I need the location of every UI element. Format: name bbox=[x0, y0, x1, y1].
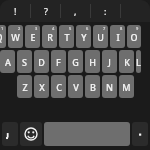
staticText: 5 bbox=[69, 26, 72, 31]
button[interactable]: Y bbox=[76, 25, 91, 48]
staticText: I bbox=[116, 31, 120, 43]
button[interactable]: Emoji bbox=[20, 122, 42, 146]
button[interactable]: ? bbox=[31, 0, 60, 22]
staticText: G bbox=[72, 56, 79, 68]
button[interactable]: V bbox=[68, 75, 83, 98]
button[interactable]: Z bbox=[17, 75, 32, 98]
staticText: K bbox=[124, 56, 130, 68]
staticText: H bbox=[89, 56, 96, 68]
button[interactable]: , bbox=[61, 0, 90, 22]
staticText: 1 bbox=[1, 26, 4, 31]
button[interactable]: W bbox=[8, 25, 23, 48]
staticText: , bbox=[74, 5, 77, 17]
button[interactable]: I bbox=[110, 25, 125, 48]
button[interactable]: E bbox=[25, 25, 40, 48]
staticText: S bbox=[22, 56, 27, 68]
staticText: Y bbox=[81, 31, 87, 43]
button[interactable]: O bbox=[127, 25, 141, 48]
button[interactable]: Q bbox=[0, 25, 6, 48]
staticText: D bbox=[38, 56, 45, 68]
staticText: A bbox=[5, 56, 11, 68]
button[interactable]: Comma bbox=[2, 122, 18, 146]
staticText: : bbox=[104, 5, 107, 17]
staticText: B bbox=[90, 81, 96, 93]
button[interactable]: C bbox=[51, 75, 66, 98]
button[interactable]: T bbox=[59, 25, 74, 48]
button[interactable]: H bbox=[85, 50, 100, 73]
staticText: E bbox=[30, 31, 36, 43]
button[interactable]: ! bbox=[0, 0, 30, 22]
button[interactable]: R bbox=[42, 25, 57, 48]
staticText: X bbox=[39, 81, 45, 93]
staticText: R bbox=[47, 31, 53, 43]
staticText: C bbox=[56, 81, 62, 93]
button[interactable]: G bbox=[68, 50, 83, 73]
staticText: U bbox=[97, 31, 104, 43]
staticText: M bbox=[122, 81, 131, 93]
staticText: V bbox=[73, 81, 79, 93]
button[interactable]: D bbox=[34, 50, 49, 73]
staticText: ! bbox=[14, 5, 17, 17]
button[interactable]: F bbox=[51, 50, 66, 73]
button[interactable]: N bbox=[102, 75, 117, 98]
staticText: 8 bbox=[120, 26, 123, 31]
button[interactable]: J bbox=[102, 50, 117, 73]
staticText: Z bbox=[22, 81, 28, 93]
button[interactable]: Space bbox=[44, 122, 130, 146]
staticText: O bbox=[130, 31, 138, 43]
staticText: Q bbox=[0, 31, 3, 43]
staticText: 4 bbox=[52, 26, 55, 31]
button[interactable]: U bbox=[93, 25, 108, 48]
staticText: T bbox=[64, 31, 70, 43]
button[interactable]: M bbox=[119, 75, 134, 98]
button[interactable]: B bbox=[85, 75, 100, 98]
staticText: 3 bbox=[35, 26, 38, 31]
button[interactable]: L bbox=[136, 50, 141, 73]
staticText: J bbox=[108, 56, 111, 68]
staticText: L bbox=[136, 56, 141, 68]
button[interactable]: X bbox=[34, 75, 49, 98]
staticText: ? bbox=[44, 5, 48, 17]
button[interactable]: K bbox=[119, 50, 134, 73]
staticText: 9 bbox=[136, 26, 139, 31]
staticText: 7 bbox=[103, 26, 106, 31]
staticText: N bbox=[106, 81, 113, 93]
staticText: 6 bbox=[86, 26, 89, 31]
button[interactable]: S bbox=[17, 50, 32, 73]
button[interactable]: A bbox=[0, 50, 15, 73]
staticText: F bbox=[56, 56, 61, 68]
staticText: 2 bbox=[18, 26, 21, 31]
staticText: W bbox=[11, 31, 20, 43]
button[interactable]: Period bbox=[132, 122, 148, 146]
button[interactable]: : bbox=[91, 0, 120, 22]
